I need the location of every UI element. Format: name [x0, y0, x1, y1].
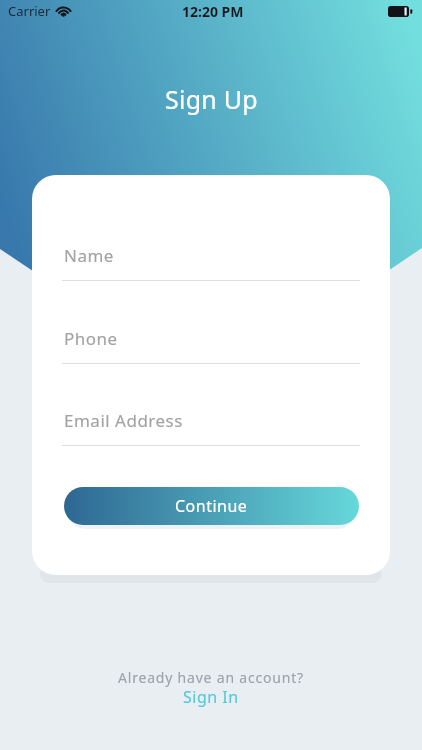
button[interactable]: Continue [64, 487, 359, 525]
button[interactable]: Name [62, 235, 360, 281]
staticText: Email Address [64, 409, 183, 432]
staticText: Already have an account? [118, 668, 304, 687]
staticText: Phone [64, 327, 118, 350]
staticText: Sign In [183, 686, 239, 708]
button[interactable]: Sign In [183, 686, 239, 708]
staticText: 12:20 PM [182, 2, 244, 21]
staticText: Carrier [8, 2, 51, 20]
button[interactable]: Phone [62, 318, 360, 364]
staticText: Sign Up [165, 82, 258, 116]
button[interactable]: Email Address [62, 400, 360, 446]
staticText: Continue [175, 495, 248, 517]
staticText: Name [64, 244, 114, 267]
